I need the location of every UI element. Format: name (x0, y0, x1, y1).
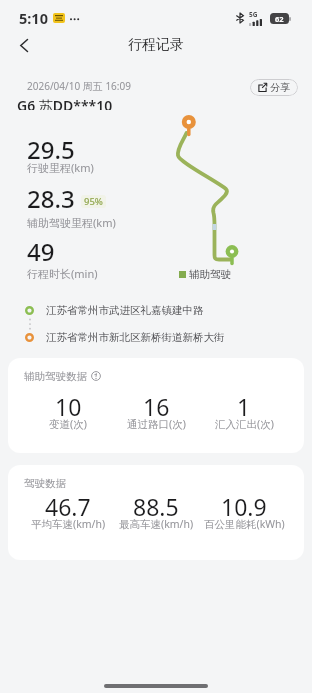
staticText: 88.5 (133, 491, 179, 517)
staticText: 江苏省常州市新北区新桥街道新桥大街 (46, 331, 225, 344)
staticText: 辅助驾驶 (189, 268, 231, 281)
button[interactable]: 江苏省常州市武进区礼嘉镇建中路 (17, 303, 204, 317)
staticText: 29.5 (27, 133, 75, 160)
staticText: 10 (55, 391, 82, 417)
staticText: 驾驶数据 (24, 477, 66, 490)
staticText: 10.9 (221, 491, 267, 517)
staticText: 5:10 (19, 8, 48, 28)
staticText: 95% (84, 195, 103, 208)
staticText: 江苏省常州市武进区礼嘉镇建中路 (46, 304, 204, 317)
staticText: 辅助驾驶数据 (24, 370, 87, 383)
staticText: 62 (275, 14, 284, 24)
staticText: 汇入汇出(次) (215, 417, 274, 431)
staticText: 辅助驾驶里程(km) (27, 215, 116, 230)
staticText: 通过路口(次) (127, 417, 186, 431)
staticText: 行驶里程(km) (27, 160, 94, 175)
staticText: 5G (249, 10, 258, 19)
button[interactable]: 辅助驾驶数据 (8, 358, 304, 453)
staticText: 行程时长(min) (27, 266, 98, 281)
staticText: 最高车速(km/h) (119, 517, 194, 531)
staticText: G6 苏DD***10 (17, 96, 113, 110)
staticText: 49 (27, 235, 55, 262)
staticText: 16 (143, 391, 170, 417)
button[interactable] (13, 34, 35, 56)
button[interactable]: 江苏省常州市新北区新桥街道新桥大街 (17, 330, 225, 344)
staticText: 分享 (270, 81, 290, 94)
staticText: 变道(次) (49, 417, 87, 431)
staticText: 2026/04/10 周五 16:09 (27, 79, 131, 93)
staticText: 46.7 (45, 491, 91, 517)
staticText: 平均车速(km/h) (31, 517, 106, 531)
button[interactable]: 分享 (250, 79, 298, 96)
staticText: 1 (237, 391, 251, 417)
staticText: 百公里能耗(kWh) (204, 517, 285, 531)
staticText: 28.3 (27, 182, 75, 209)
staticText: 行程记录 (128, 36, 184, 54)
button[interactable]: 驾驶数据 (8, 465, 304, 560)
